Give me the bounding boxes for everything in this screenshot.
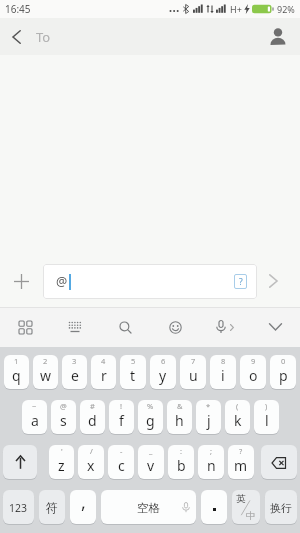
button[interactable]: 英 — [232, 490, 260, 525]
staticText: r — [101, 366, 107, 385]
button[interactable]: n — [198, 445, 224, 480]
staticText: 空格 — [137, 501, 160, 515]
button[interactable] — [257, 263, 300, 299]
staticText: v — [147, 456, 155, 475]
button[interactable]: 123 — [3, 490, 34, 525]
button[interactable] — [261, 445, 297, 480]
button[interactable]: r — [91, 355, 116, 390]
staticText: e — [71, 366, 79, 385]
button[interactable]: u — [180, 355, 206, 390]
staticText: , — [81, 490, 86, 515]
staticText: % — [147, 401, 154, 411]
staticText: H+ — [230, 3, 242, 15]
button[interactable]: p — [270, 355, 296, 390]
staticText: s — [60, 411, 67, 430]
staticText: q — [12, 366, 21, 385]
button[interactable]: l — [254, 400, 279, 435]
button[interactable]: z — [49, 445, 74, 480]
staticText: z — [58, 456, 65, 475]
staticText: k — [234, 411, 242, 430]
staticText: 3 — [72, 356, 77, 366]
button[interactable]: i — [210, 355, 236, 390]
staticText: 5 — [131, 356, 136, 366]
staticText: ? — [239, 446, 243, 456]
staticText: 6 — [161, 356, 166, 366]
button[interactable]: @ — [43, 264, 257, 299]
button[interactable]: e — [62, 355, 87, 390]
button[interactable]: t — [120, 355, 146, 390]
staticText: o — [249, 366, 258, 385]
staticText: 1 — [14, 356, 19, 366]
staticText: c — [118, 456, 125, 475]
button[interactable] — [3, 445, 37, 480]
button[interactable]: h — [167, 400, 192, 435]
staticText: j — [207, 411, 211, 430]
staticText: b — [177, 456, 186, 475]
staticText: _ — [149, 446, 153, 456]
staticText: 符 — [46, 500, 58, 515]
staticText: u — [189, 366, 198, 385]
staticText: g — [146, 411, 155, 430]
staticText: 换行 — [270, 501, 292, 515]
staticText: l — [265, 411, 269, 430]
staticText: - — [120, 446, 123, 456]
staticText: 16:45 — [5, 2, 31, 16]
staticText: & — [177, 401, 183, 411]
button[interactable]: 换行 — [265, 490, 297, 525]
staticText: 8 — [221, 356, 226, 366]
staticText: ~ — [32, 401, 37, 411]
button[interactable]: m — [228, 445, 254, 480]
button[interactable] — [150, 307, 200, 347]
button[interactable]: v — [138, 445, 164, 480]
button[interactable]: a — [22, 400, 47, 435]
staticText: @ — [60, 401, 67, 411]
button[interactable] — [250, 307, 300, 347]
button[interactable]: 空格 — [101, 490, 196, 525]
staticText: x — [87, 456, 95, 475]
staticText: 123 — [9, 501, 28, 515]
staticText: a — [31, 411, 39, 430]
button[interactable]: w — [33, 355, 58, 390]
staticText: # — [90, 401, 95, 411]
button[interactable]: f — [109, 400, 134, 435]
button[interactable]: o — [240, 355, 266, 390]
button[interactable]: g — [138, 400, 163, 435]
button[interactable]: , — [70, 490, 96, 525]
button[interactable] — [256, 18, 300, 55]
button[interactable] — [50, 307, 100, 347]
button[interactable] — [100, 307, 150, 347]
staticText: 4 — [101, 356, 106, 366]
staticText: ? — [239, 276, 243, 288]
staticText: p — [279, 366, 288, 385]
staticText: : — [180, 446, 183, 456]
button[interactable]: y — [150, 355, 176, 390]
button[interactable] — [0, 263, 43, 299]
staticText: ) — [265, 401, 268, 411]
button[interactable]: c — [108, 445, 134, 480]
staticText: To — [36, 28, 51, 46]
staticText: w — [40, 366, 52, 385]
staticText: 92% — [277, 3, 295, 15]
staticText: 中 — [246, 510, 256, 522]
staticText: 2 — [43, 356, 48, 366]
button[interactable]: k — [225, 400, 250, 435]
button[interactable] — [200, 307, 250, 347]
staticText: 0 — [281, 356, 286, 366]
staticText: 9 — [251, 356, 256, 366]
button[interactable]: d — [80, 400, 105, 435]
button[interactable]: 符 — [39, 490, 65, 525]
button[interactable]: q — [4, 355, 29, 390]
button[interactable]: s — [51, 400, 76, 435]
button[interactable]: j — [196, 400, 221, 435]
staticText: ( — [236, 401, 239, 411]
staticText: 英 — [236, 493, 246, 505]
staticText: ! — [120, 401, 123, 411]
button[interactable]: x — [78, 445, 104, 480]
button[interactable] — [0, 307, 50, 347]
staticText: @ — [56, 273, 68, 290]
button[interactable] — [201, 490, 227, 525]
staticText: t — [130, 366, 136, 385]
staticText: n — [207, 456, 216, 475]
button[interactable]: b — [168, 445, 194, 480]
button[interactable] — [0, 18, 33, 55]
